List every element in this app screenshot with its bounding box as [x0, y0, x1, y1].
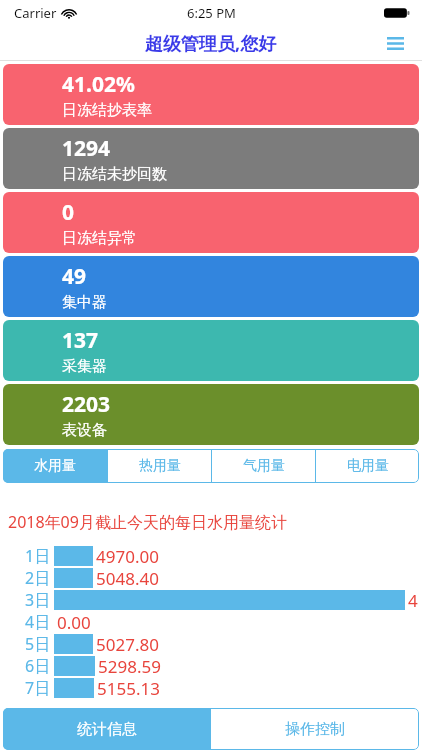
staticText: Carrier	[14, 4, 57, 22]
staticText: 日冻结未抄回数	[62, 165, 167, 184]
staticText: 1日	[25, 545, 51, 567]
staticText: 0.00	[57, 611, 91, 633]
staticText: 44592.40	[408, 589, 422, 611]
button[interactable]: 137	[3, 320, 419, 381]
button[interactable]: 49	[3, 256, 419, 317]
staticText: 操作控制	[285, 720, 345, 739]
button[interactable]: 水用量	[3, 449, 107, 483]
staticText: 3日	[25, 589, 51, 611]
staticText: 7日	[25, 677, 51, 699]
staticText: 水用量	[34, 457, 76, 475]
button[interactable]: 电用量	[316, 449, 419, 483]
staticText: 电用量	[347, 457, 389, 475]
staticText: 热用量	[139, 457, 181, 475]
staticText: 5日	[25, 633, 51, 655]
staticText: 137	[62, 326, 99, 355]
button[interactable]: 0	[3, 192, 419, 253]
staticText: 2203	[62, 390, 111, 419]
staticText: 41.02%	[62, 70, 135, 99]
staticText: 日冻结异常	[62, 229, 137, 248]
staticText: 超级管理员,您好	[145, 31, 277, 56]
button[interactable]: 操作控制	[211, 708, 419, 750]
staticText: 5048.40	[96, 567, 159, 589]
staticText: 2日	[25, 567, 51, 589]
staticText: 5298.59	[98, 655, 161, 677]
button[interactable]: 统计信息	[3, 708, 210, 750]
staticText: 日冻结抄表率	[62, 101, 152, 120]
staticText: 0	[62, 198, 75, 227]
button[interactable]: 2203	[3, 384, 419, 445]
staticText: 2018年09月截止今天的每日水用量统计	[8, 511, 287, 533]
staticText: 气用量	[243, 457, 285, 475]
staticText: 49	[62, 262, 87, 291]
button[interactable]: Menu	[378, 26, 412, 60]
staticText: 表设备	[62, 421, 107, 440]
button[interactable]: 1294	[3, 128, 419, 189]
staticText: 4970.00	[96, 545, 159, 567]
staticText: 1294	[62, 134, 111, 163]
staticText: 4日	[25, 611, 51, 633]
staticText: 6日	[25, 655, 51, 677]
staticText: 集中器	[62, 293, 107, 312]
staticText: 采集器	[62, 357, 107, 376]
staticText: 6:25 PM	[187, 4, 236, 22]
staticText: 5155.13	[97, 677, 160, 699]
staticText: 5027.80	[96, 633, 159, 655]
button[interactable]: 气用量	[212, 449, 315, 483]
staticText: 统计信息	[77, 720, 137, 739]
button[interactable]: 热用量	[108, 449, 211, 483]
button[interactable]: 41.02%	[3, 64, 419, 125]
